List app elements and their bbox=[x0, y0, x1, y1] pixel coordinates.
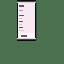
button[interactable] bbox=[18, 13, 35, 19]
button[interactable] bbox=[18, 19, 35, 25]
button[interactable] bbox=[18, 3, 35, 8]
button[interactable] bbox=[19, 33, 34, 38]
button[interactable] bbox=[18, 25, 35, 31]
